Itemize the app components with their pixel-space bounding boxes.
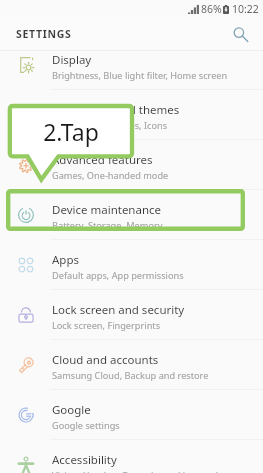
button[interactable]: Google <box>0 390 263 440</box>
button[interactable]: Apps <box>0 240 263 290</box>
button[interactable]: Lock screen and security <box>0 290 263 340</box>
button[interactable]: Wallpapers and themes <box>0 90 263 140</box>
staticText: Vision, Hearing, Dexterity and interacti… <box>52 469 230 473</box>
staticText: Cloud and accounts <box>52 352 159 368</box>
staticText: SETTINGS <box>16 27 72 41</box>
staticText: Games, One-handed mode <box>52 169 169 182</box>
button[interactable]: Advanced features <box>0 140 263 190</box>
staticText: Lock screen and security <box>52 302 185 318</box>
button[interactable]: Device maintenance highlight <box>6 189 245 231</box>
button[interactable]: Display <box>0 40 263 90</box>
staticText: Google <box>52 402 91 418</box>
staticText: Wallpapers and themes <box>52 102 180 118</box>
staticText: Battery, Storage, Memory <box>52 219 163 232</box>
staticText: Display <box>52 52 92 68</box>
staticText: Advanced features <box>52 152 153 168</box>
button[interactable]: Device maintenance <box>0 190 263 240</box>
staticText: Lock screen, Fingerprints <box>52 319 161 332</box>
staticText: Google settings <box>52 419 120 432</box>
staticText: Samsung Cloud, Backup and restore <box>52 369 209 382</box>
button[interactable]: Accessibility <box>0 440 263 473</box>
staticText: Accessibility <box>52 452 117 468</box>
staticText: Brightness, Blue light filter, Home scre… <box>52 69 228 82</box>
staticText: Device maintenance <box>52 202 162 218</box>
staticText: Default apps, App permissions <box>52 269 184 282</box>
button[interactable]: Search <box>228 22 252 46</box>
staticText: 2.Tap <box>9 116 133 147</box>
button[interactable]: Cloud and accounts <box>0 340 263 390</box>
staticText: 10:22 <box>232 2 259 16</box>
staticText: Wallpapers, Themes, Icons <box>52 119 168 132</box>
staticText: 86% <box>201 2 222 16</box>
staticText: Apps <box>52 252 80 268</box>
